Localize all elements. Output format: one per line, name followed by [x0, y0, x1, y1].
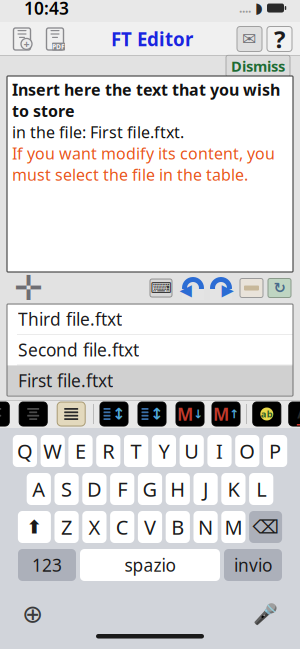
- button[interactable]: Align left: [0, 402, 9, 426]
- button[interactable]: spazio: [80, 549, 220, 581]
- staticText: spazio: [124, 553, 175, 576]
- button[interactable]: W: [41, 435, 65, 467]
- button[interactable]: M: [221, 511, 245, 543]
- button[interactable]: Shift: [18, 511, 51, 543]
- staticText: 🎤: [253, 603, 278, 625]
- staticText: invio: [234, 553, 272, 576]
- button[interactable]: Decrease line spacing: [100, 402, 128, 426]
- staticText: +: [23, 37, 29, 51]
- button[interactable]: A: [27, 473, 51, 505]
- button[interactable]: Decrease font size: [176, 402, 204, 426]
- staticText: ▶: [221, 281, 233, 299]
- staticText: C: [116, 514, 129, 540]
- button[interactable]: Justify: [57, 402, 85, 426]
- staticText: I: [216, 438, 223, 464]
- button[interactable]: Keyboard: [150, 279, 172, 297]
- button[interactable]: Delete: [249, 511, 282, 543]
- button[interactable]: Dictation: [253, 603, 300, 625]
- button[interactable]: G: [138, 473, 162, 505]
- button[interactable]: Undo: [172, 276, 206, 300]
- button[interactable]: Redo: [206, 276, 234, 300]
- button[interactable]: O: [235, 435, 259, 467]
- button[interactable]: L: [249, 473, 273, 505]
- button[interactable]: invio: [224, 549, 282, 581]
- staticText: Second file.ftxt: [18, 338, 139, 361]
- button[interactable]: Y: [152, 435, 176, 467]
- staticText: First file.ftxt: [18, 369, 113, 392]
- button[interactable]: 123: [18, 549, 76, 581]
- staticText: ◗: [255, 0, 263, 16]
- button[interactable]: J: [193, 473, 218, 505]
- staticText: ....: [239, 0, 251, 16]
- staticText: Dismiss: [231, 56, 285, 76]
- staticText: ↓: [193, 407, 203, 421]
- button[interactable]: B: [166, 511, 190, 543]
- button[interactable]: Align right: [19, 402, 47, 426]
- button[interactable]: Increase font size: [212, 402, 240, 426]
- button[interactable]: Erase: [234, 278, 263, 297]
- staticText: 123: [32, 553, 62, 576]
- staticText: R: [102, 438, 114, 464]
- button[interactable]: E: [68, 435, 93, 467]
- staticText: E: [75, 438, 86, 464]
- button[interactable]: R: [96, 435, 120, 467]
- button[interactable]: Share: [237, 26, 262, 51]
- staticText: A: [32, 476, 45, 502]
- button[interactable]: S: [54, 473, 79, 505]
- staticText: ?: [274, 23, 285, 55]
- staticText: Y: [158, 438, 169, 464]
- button[interactable]: First file.ftxt: [7, 365, 293, 395]
- staticText: L: [256, 476, 266, 502]
- button[interactable]: Third file.ftxt: [7, 304, 293, 335]
- button[interactable]: Change keyboard: [0, 600, 43, 628]
- staticText: N: [198, 514, 213, 540]
- button[interactable]: P: [263, 435, 287, 467]
- staticText: ↕: [112, 405, 125, 423]
- button[interactable]: Highlight: [253, 402, 281, 426]
- staticText: ↻: [273, 280, 285, 296]
- button[interactable]: Z: [54, 511, 79, 543]
- staticText: P: [269, 438, 281, 464]
- staticText: K: [227, 476, 239, 502]
- button[interactable]: I: [207, 435, 232, 467]
- staticText: W: [43, 438, 62, 464]
- staticText: V: [144, 514, 156, 540]
- staticText: H: [170, 476, 185, 502]
- button[interactable]: Second file.ftxt: [7, 335, 293, 365]
- staticText: If you want modify its content, you must…: [12, 143, 275, 185]
- staticText: B: [171, 514, 184, 540]
- staticText: ↕: [150, 405, 163, 423]
- staticText: ↑: [229, 407, 239, 421]
- button[interactable]: New file: [0, 26, 34, 52]
- button[interactable]: Move: [0, 268, 43, 308]
- staticText: M: [224, 514, 242, 540]
- staticText: G: [142, 476, 157, 502]
- staticText: Third file.ftxt: [18, 307, 122, 330]
- button[interactable]: N: [193, 511, 218, 543]
- staticText: ab: [261, 408, 273, 420]
- button[interactable]: Increase line spacing: [138, 402, 166, 426]
- staticText: ⊕: [22, 600, 43, 628]
- staticText: in the file: First file.ftxt.: [12, 121, 184, 143]
- staticText: S: [61, 476, 72, 502]
- button[interactable]: C: [110, 511, 134, 543]
- staticText: Insert here the text that you wish to st…: [12, 79, 280, 121]
- button[interactable]: T: [124, 435, 148, 467]
- button[interactable]: Export PDF: [34, 26, 67, 52]
- staticText: Q: [17, 438, 33, 464]
- button[interactable]: Help: [262, 23, 300, 55]
- button[interactable]: Restore: [263, 278, 300, 297]
- button[interactable]: F: [110, 473, 134, 505]
- staticText: Z: [61, 514, 72, 540]
- button[interactable]: D: [82, 473, 106, 505]
- button[interactable]: V: [138, 511, 162, 543]
- staticText: D: [87, 476, 102, 502]
- button[interactable]: K: [221, 473, 245, 505]
- button[interactable]: Q: [13, 435, 37, 467]
- button[interactable]: X: [82, 511, 106, 543]
- button[interactable]: Dismiss: [226, 55, 290, 77]
- button[interactable]: Text colour: [289, 402, 300, 426]
- button[interactable]: U: [180, 435, 204, 467]
- button[interactable]: H: [166, 473, 190, 505]
- staticText: ⌫: [253, 516, 279, 538]
